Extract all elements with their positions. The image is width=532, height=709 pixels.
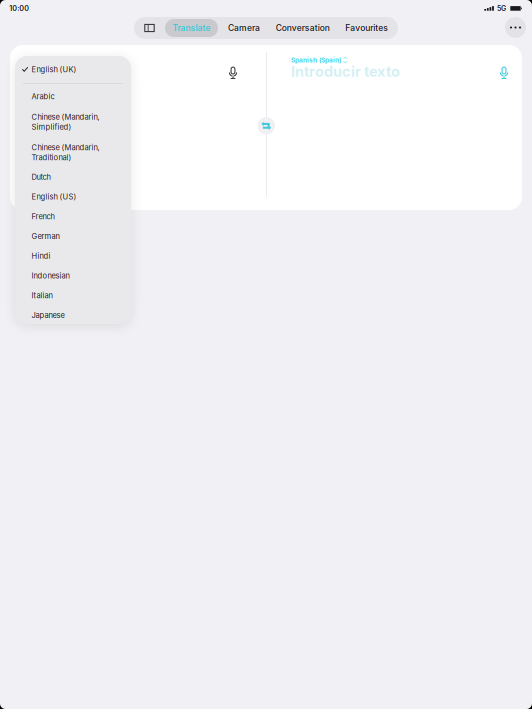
button[interactable]: Camera	[218, 17, 270, 39]
staticText: German	[31, 232, 59, 241]
staticText: Spanish (Spain)	[291, 56, 341, 64]
staticText: 5G	[497, 4, 506, 13]
staticText: Indonesian	[31, 271, 69, 280]
button[interactable]: German	[15, 231, 131, 250]
staticText: Italian	[31, 291, 52, 300]
staticText: Chinese (Mandarin,	[31, 112, 99, 122]
staticText: Chinese (Mandarin,	[31, 143, 99, 152]
button[interactable]: Chinese (Mandarin,	[15, 112, 131, 141]
button[interactable]: Italian	[15, 290, 131, 309]
staticText: English (US)	[31, 192, 76, 201]
button[interactable]: Speak English	[222, 62, 244, 84]
staticText: Dutch	[31, 172, 50, 182]
button[interactable]: Indonesian	[15, 271, 131, 290]
button[interactable]: Spanish (Spain)	[291, 55, 347, 65]
staticText: Conversation	[276, 23, 330, 33]
staticText: Introducir texto	[291, 63, 400, 80]
staticText: Japanese	[31, 311, 64, 320]
staticText: Traditional)	[31, 153, 71, 162]
button[interactable]: More options	[505, 17, 526, 38]
button[interactable]: Translate	[165, 19, 218, 37]
button[interactable]: Japanese	[15, 310, 131, 329]
button[interactable]: Favourites	[335, 17, 398, 39]
button[interactable]: Chinese (Mandarin,	[15, 142, 131, 171]
staticText: Camera	[228, 23, 260, 33]
button[interactable]: Dutch	[15, 172, 131, 191]
staticText: Hindi	[31, 251, 50, 261]
staticText: Arabic	[31, 92, 54, 101]
button[interactable]: Hindi	[15, 251, 131, 270]
staticText: French	[31, 212, 54, 221]
button[interactable]: Arabic	[15, 91, 131, 110]
staticText: Favourites	[345, 23, 388, 33]
staticText: 10:00	[9, 4, 29, 13]
staticText: English (UK)	[31, 65, 76, 74]
button[interactable]: Toggle sidebar	[134, 17, 165, 39]
button[interactable]: English (UK)	[15, 64, 131, 83]
button[interactable]: Swap languages	[257, 117, 275, 134]
button[interactable]: French	[15, 211, 131, 230]
staticText: Simplified)	[31, 122, 71, 132]
staticText: Translate	[172, 23, 210, 33]
button[interactable]: English (US)	[15, 192, 131, 211]
button[interactable]: Speak Spanish	[493, 62, 515, 84]
button[interactable]: Conversation	[270, 17, 335, 39]
